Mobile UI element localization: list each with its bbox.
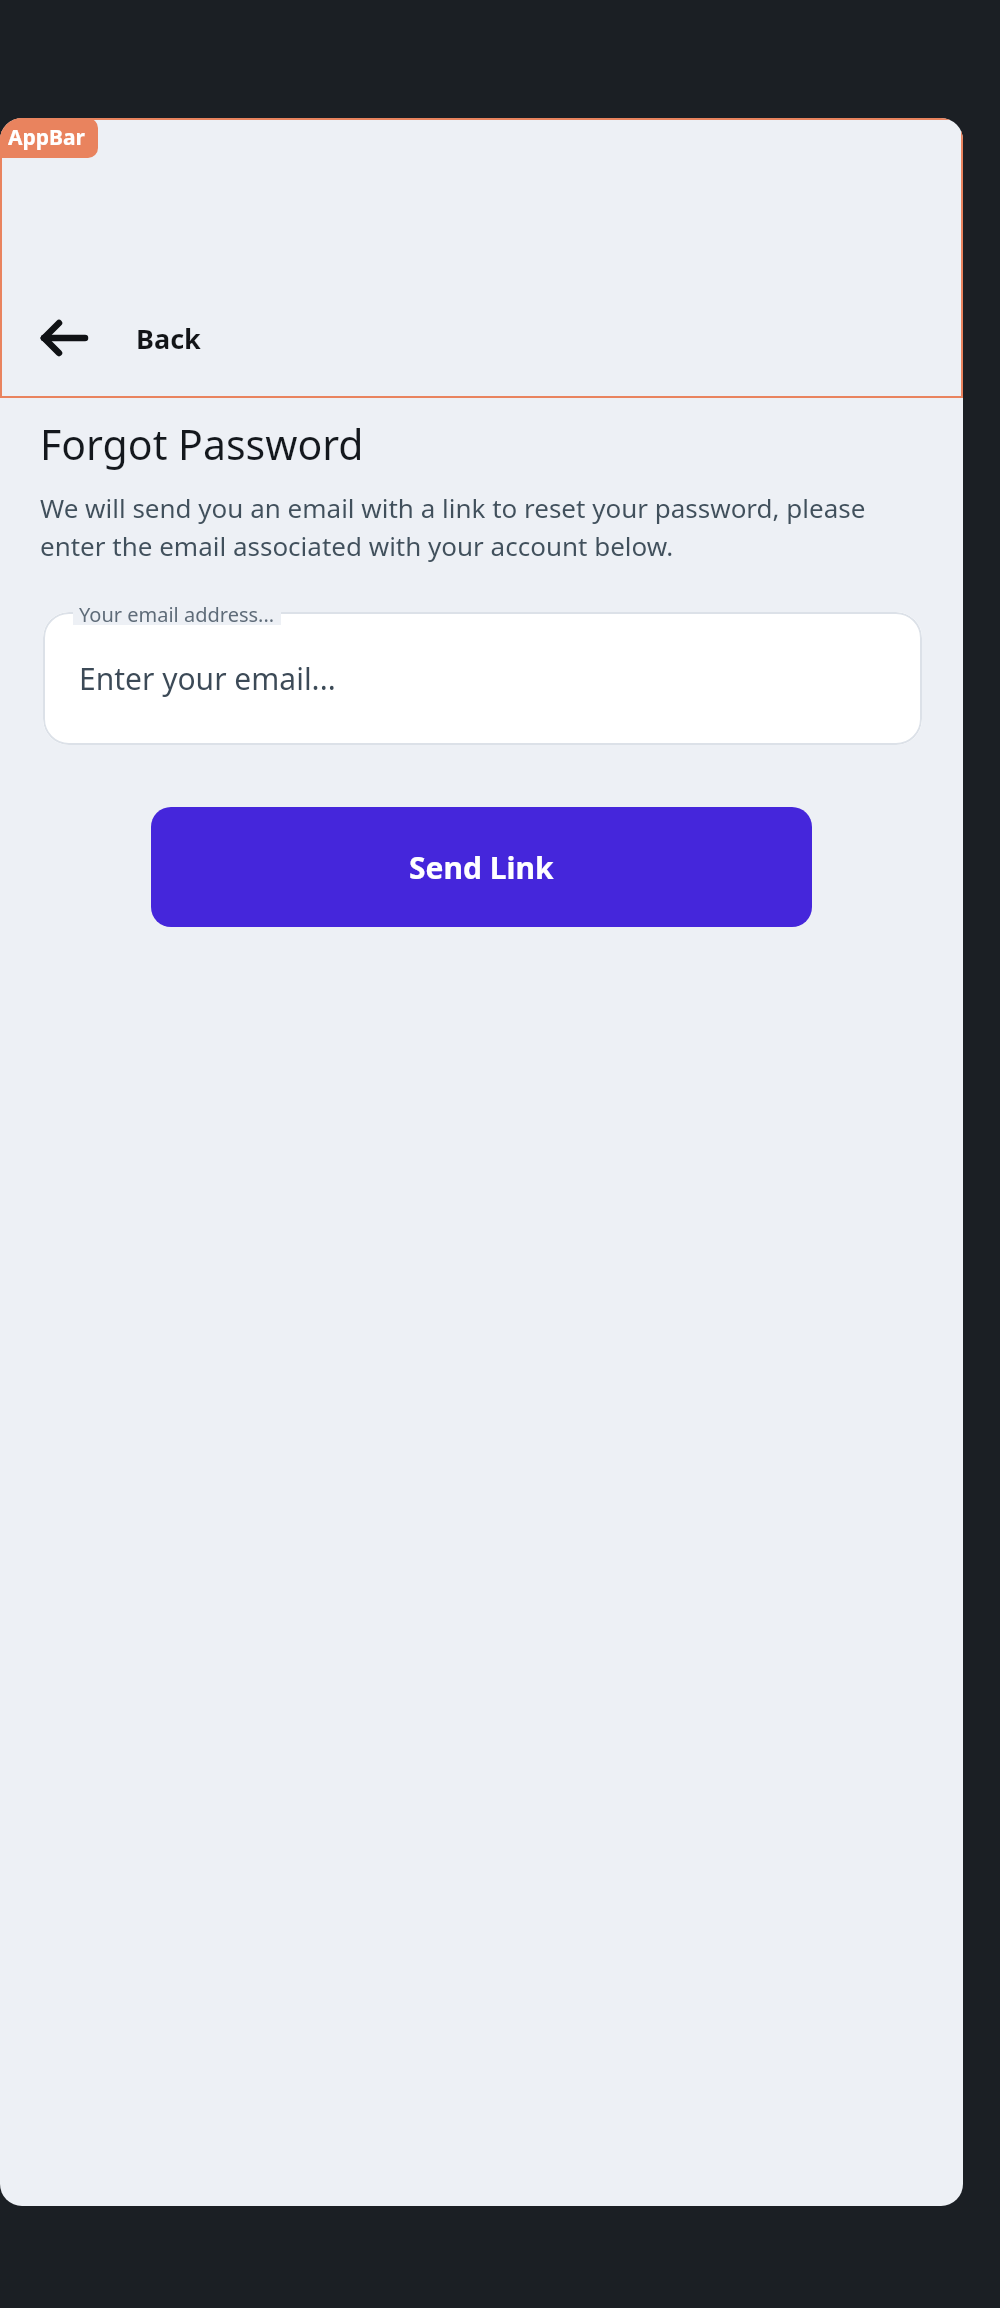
staticText: Your email address... <box>79 601 275 625</box>
button[interactable]: Enter your email... <box>43 612 922 745</box>
button[interactable]: Back <box>0 290 229 386</box>
staticText: Forgot Password <box>40 416 364 472</box>
button[interactable]: Send Link <box>151 807 812 927</box>
staticText: Back <box>136 320 201 357</box>
staticText: AppBar <box>8 123 86 152</box>
staticText: We will send you an email with a link to… <box>40 490 915 563</box>
other: Back <box>36 310 92 366</box>
staticText: Send Link <box>409 847 554 888</box>
staticText: Enter your email... <box>79 658 336 699</box>
